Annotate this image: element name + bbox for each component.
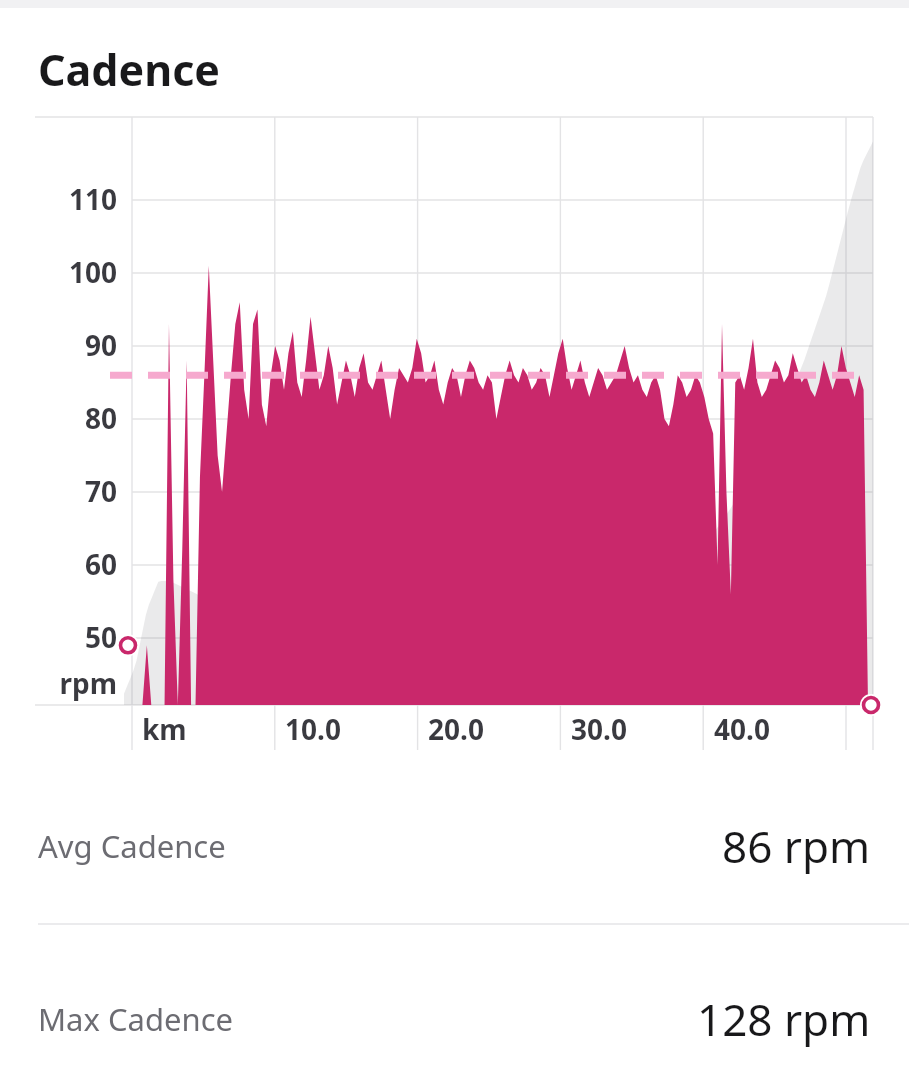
staticText: 10.0 bbox=[285, 710, 341, 748]
staticText: 50 bbox=[84, 618, 117, 656]
staticText: 30.0 bbox=[571, 710, 627, 748]
staticText: rpm bbox=[59, 664, 117, 702]
staticText: km bbox=[142, 710, 187, 748]
staticText: 128 rpm bbox=[697, 989, 871, 1049]
button[interactable]: Max Cadence bbox=[0, 941, 909, 1080]
staticText: Max Cadence bbox=[38, 998, 234, 1040]
staticText: 70 bbox=[84, 472, 117, 510]
staticText: 100 bbox=[68, 253, 117, 291]
staticText: 86 rpm bbox=[722, 816, 871, 876]
staticText: 20.0 bbox=[428, 710, 484, 748]
staticText: 90 bbox=[84, 326, 117, 364]
button[interactable]: Cadence over distance chart bbox=[0, 0, 909, 1080]
staticText: Cadence bbox=[38, 40, 221, 99]
staticText: 60 bbox=[84, 545, 117, 583]
staticText: 110 bbox=[68, 180, 117, 218]
staticText: Avg Cadence bbox=[38, 825, 226, 867]
button[interactable]: Avg Cadence bbox=[0, 768, 909, 923]
staticText: 40.0 bbox=[714, 710, 770, 748]
staticText: 80 bbox=[84, 399, 117, 437]
button[interactable]: Cadence bbox=[0, 38, 909, 100]
